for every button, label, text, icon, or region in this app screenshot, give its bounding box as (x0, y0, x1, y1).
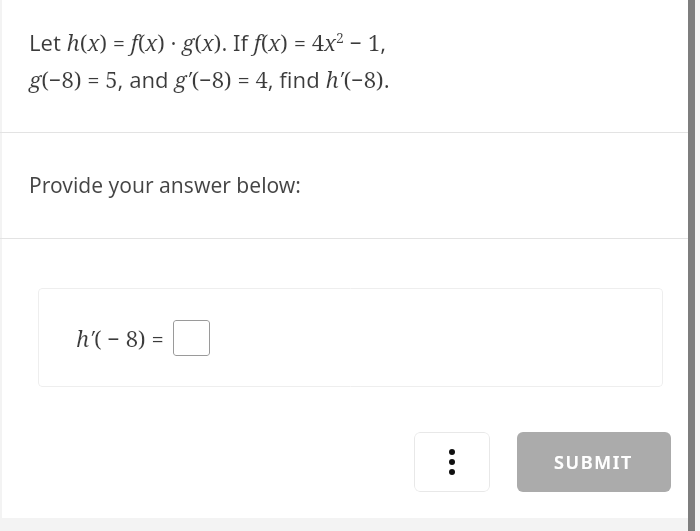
staticText: h′( − 8) = (76, 323, 164, 353)
button[interactable]: Answer input (173, 320, 210, 356)
button[interactable]: More options (414, 432, 490, 492)
button[interactable]: h′( − 8) = (38, 288, 663, 387)
staticText: Let h(x) = f(x) · g(x). If f(x) = 4x2 − … (29, 27, 387, 57)
staticText: g(−8) = 5, and g′(−8) = 4, find h′(−8). (29, 64, 390, 94)
staticText: SUBMIT (554, 450, 634, 475)
staticText: Provide your answer below: (29, 171, 301, 200)
button[interactable]: SUBMIT (517, 432, 671, 492)
